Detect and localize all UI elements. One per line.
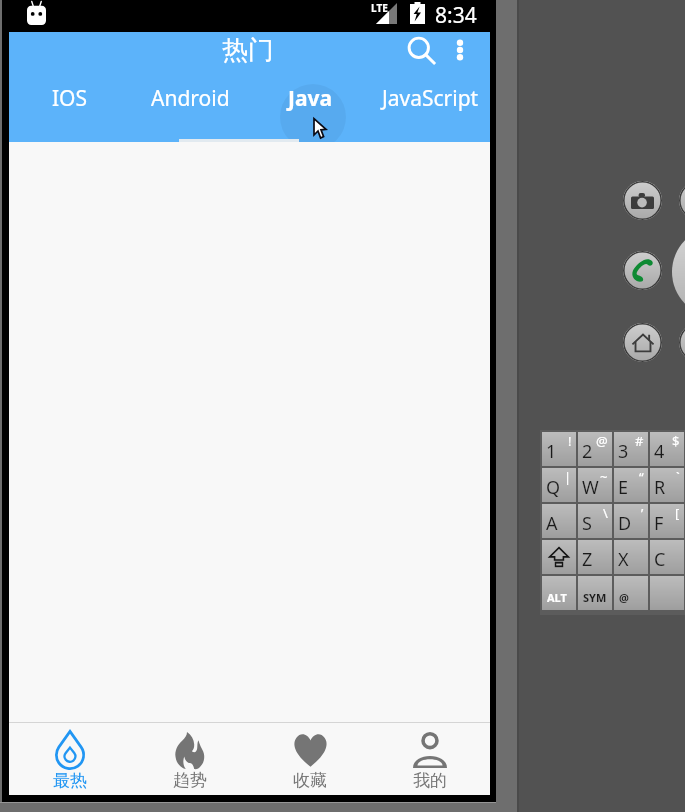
button[interactable]: Q xyxy=(542,468,576,502)
staticText: F xyxy=(654,511,664,536)
staticText: 趋势 xyxy=(173,770,207,791)
staticText: $ xyxy=(672,432,680,450)
button[interactable]: S xyxy=(578,504,612,538)
staticText: # xyxy=(635,432,644,450)
staticText: 3 xyxy=(618,439,629,464)
button[interactable]: ALT xyxy=(542,576,576,610)
other: Call xyxy=(631,259,655,283)
staticText: 我的 xyxy=(413,770,447,791)
staticText: Java xyxy=(288,84,333,113)
staticText: ! xyxy=(568,432,572,450)
button[interactable]: Search xyxy=(400,29,443,72)
button[interactable] xyxy=(679,181,685,220)
staticText: A xyxy=(546,511,558,536)
button[interactable]: 2 xyxy=(578,432,612,466)
staticText: \ xyxy=(603,504,608,522)
button[interactable]: 最热 xyxy=(9,723,130,795)
staticText: ’ xyxy=(641,504,644,522)
button[interactable]: D-pad xyxy=(672,227,685,317)
staticText: R xyxy=(654,475,666,500)
button[interactable] xyxy=(679,323,685,362)
staticText: W xyxy=(582,475,599,500)
staticText: D xyxy=(618,511,632,536)
button[interactable]: 我的 xyxy=(370,723,490,795)
button[interactable]: 4 xyxy=(650,432,684,466)
button[interactable] xyxy=(650,576,684,610)
staticText: “ xyxy=(639,468,644,486)
staticText: IOS xyxy=(52,84,88,113)
button[interactable]: X xyxy=(614,540,648,574)
button[interactable]: F xyxy=(650,504,684,538)
button[interactable]: Java xyxy=(250,75,370,142)
button[interactable]: D xyxy=(614,504,648,538)
staticText: Z xyxy=(582,547,593,572)
staticText: 热门 xyxy=(222,34,274,67)
button[interactable]: SYM xyxy=(578,576,612,610)
staticText: LTE xyxy=(371,1,388,15)
staticText: Android xyxy=(151,84,230,113)
staticText: 最热 xyxy=(53,770,87,791)
staticText: ~ xyxy=(600,468,608,486)
button[interactable]: Android xyxy=(130,75,250,142)
staticText: 8:34 xyxy=(435,1,477,30)
staticText: X xyxy=(618,547,629,572)
staticText: 2 xyxy=(582,439,593,464)
button[interactable]: A xyxy=(542,504,576,538)
button[interactable]: 3 xyxy=(614,432,648,466)
staticText: 收藏 xyxy=(293,770,327,791)
button[interactable]: IOS xyxy=(9,75,130,142)
button[interactable]: R xyxy=(650,468,684,502)
button[interactable]: JavaScript xyxy=(370,75,490,142)
other: Home xyxy=(632,332,654,354)
staticText: | xyxy=(564,468,572,486)
staticText: [ xyxy=(675,504,680,522)
button[interactable]: Call xyxy=(623,251,662,290)
staticText: C xyxy=(654,547,666,572)
button[interactable]: Shift xyxy=(542,540,576,574)
staticText: 1 xyxy=(546,439,557,464)
staticText: ` xyxy=(676,468,680,486)
staticText: JavaScript xyxy=(382,84,479,113)
staticText: SYM xyxy=(583,590,607,605)
staticText: Q xyxy=(546,475,561,500)
button[interactable]: Home xyxy=(623,323,662,362)
staticText: E xyxy=(618,475,629,500)
staticText: ALT xyxy=(547,590,567,605)
button[interactable]: Camera xyxy=(623,181,662,220)
button[interactable]: W xyxy=(578,468,612,502)
button[interactable]: C xyxy=(650,540,684,574)
staticText: S xyxy=(582,511,592,536)
other: Shift xyxy=(549,547,569,568)
button[interactable]: Z xyxy=(578,540,612,574)
button[interactable]: 趋势 xyxy=(130,723,250,795)
button[interactable]: 1 xyxy=(542,432,576,466)
staticText: 4 xyxy=(654,439,665,464)
button[interactable]: @ xyxy=(614,576,648,610)
button[interactable]: 收藏 xyxy=(250,723,370,795)
button[interactable]: More options xyxy=(441,31,479,69)
staticText: @ xyxy=(619,590,629,605)
other: Camera xyxy=(631,193,654,209)
button[interactable]: E xyxy=(614,468,648,502)
staticText: @ xyxy=(596,432,608,450)
